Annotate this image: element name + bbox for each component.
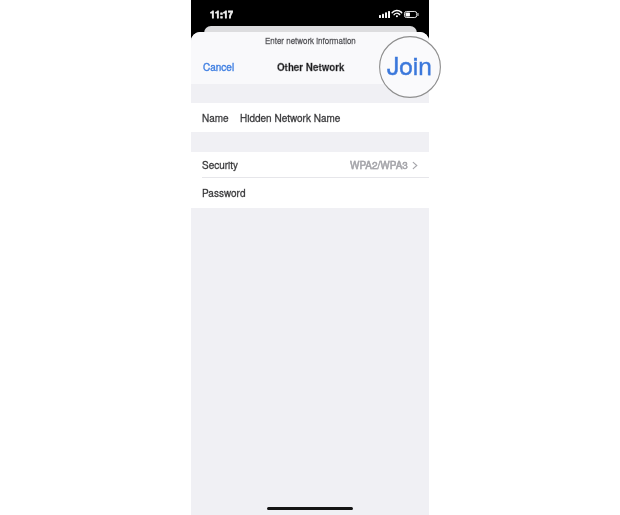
staticText: WPA2/WPA3 [350,158,408,172]
staticText: Security [202,158,239,172]
staticText: Name [202,111,229,125]
staticText: Cancel [203,60,235,74]
button[interactable]: Name [191,103,429,132]
staticText: Name [202,111,229,125]
staticText: Password [202,186,246,200]
staticText: Password [202,186,246,200]
staticText: 11:17 [210,8,234,21]
staticText: Hidden Network Name [240,111,341,125]
staticText: Enter network information [265,35,356,46]
staticText: Other Network [277,60,345,74]
staticText: Join [398,60,417,74]
staticText: WPA2/WPA3 [350,158,408,172]
staticText: Join [398,60,417,74]
staticText: Hidden Network Name [240,111,341,125]
button[interactable]: Cancel [192,52,246,82]
staticText: 11:17 [210,8,234,21]
staticText: Join [387,47,432,82]
staticText: Other Network [277,60,345,74]
button[interactable]: Security [191,152,429,178]
staticText: Join [387,47,432,82]
staticText: Security [202,158,239,172]
staticText: Cancel [203,60,235,74]
staticText: Enter network information [265,35,356,46]
button[interactable]: Join [387,52,428,82]
button[interactable]: Magnified Join button [379,36,441,98]
button[interactable]: Password [191,178,429,208]
